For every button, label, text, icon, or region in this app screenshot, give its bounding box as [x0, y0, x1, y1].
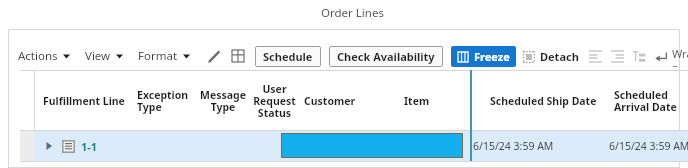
button[interactable]: View [81, 45, 128, 67]
staticText: Fulfillment Line [43, 94, 125, 108]
button[interactable]: Fulfillment Line [35, 71, 131, 130]
button[interactable]: Customer [300, 71, 400, 130]
button[interactable]: Message Type [197, 71, 252, 130]
staticText: 1-1 [81, 139, 98, 154]
staticText: Order Lines [321, 5, 384, 21]
button[interactable]: Hierarchy [628, 45, 650, 67]
staticText: Customer [304, 94, 356, 108]
staticText: Actions [18, 48, 58, 64]
button[interactable]: Align right [606, 45, 628, 67]
button[interactable]: Wrap [652, 46, 688, 67]
button[interactable]: Scheduled Arrival Date [614, 71, 688, 130]
button[interactable]: Exception Type [131, 71, 197, 130]
button[interactable]: Order Lines [16, 5, 688, 29]
button[interactable]: Freeze columns [227, 45, 249, 67]
button[interactable]: Item [400, 71, 478, 130]
staticText: Wrap [672, 46, 688, 67]
button[interactable]: Actions [14, 45, 75, 67]
staticText: Scheduled Ship Date [490, 94, 597, 108]
button[interactable]: Scheduled Ship Date [482, 71, 614, 130]
staticText: Format [138, 48, 178, 64]
staticText: Message Type [200, 88, 246, 114]
staticText: 6/15/24 3:59 AM [609, 139, 688, 153]
staticText: Freeze [474, 49, 510, 64]
staticText: Item [404, 94, 430, 108]
staticText: Schedule [263, 49, 313, 64]
staticText: Exception Type [137, 88, 189, 114]
staticText: Detach [540, 49, 579, 64]
button[interactable]: Line details [61, 139, 75, 153]
button[interactable]: Align left [584, 45, 606, 67]
staticText: View [85, 48, 111, 64]
button[interactable]: User Request Status [252, 71, 300, 130]
button[interactable]: Schedule [255, 46, 321, 67]
staticText: User Request Status [253, 82, 296, 120]
button[interactable]: Check Availability [329, 46, 443, 67]
button[interactable]: Detach [520, 46, 582, 67]
button[interactable]: Format [134, 45, 195, 67]
button[interactable]: Freeze [451, 46, 516, 67]
button[interactable]: Expand row [20, 131, 688, 161]
staticText: Check Availability [337, 49, 435, 64]
button[interactable]: Edit [203, 45, 225, 67]
button[interactable]: Expand row [42, 139, 56, 153]
staticText: Scheduled Arrival Date [614, 88, 677, 114]
staticText: 6/15/24 3:59 AM [473, 139, 554, 153]
